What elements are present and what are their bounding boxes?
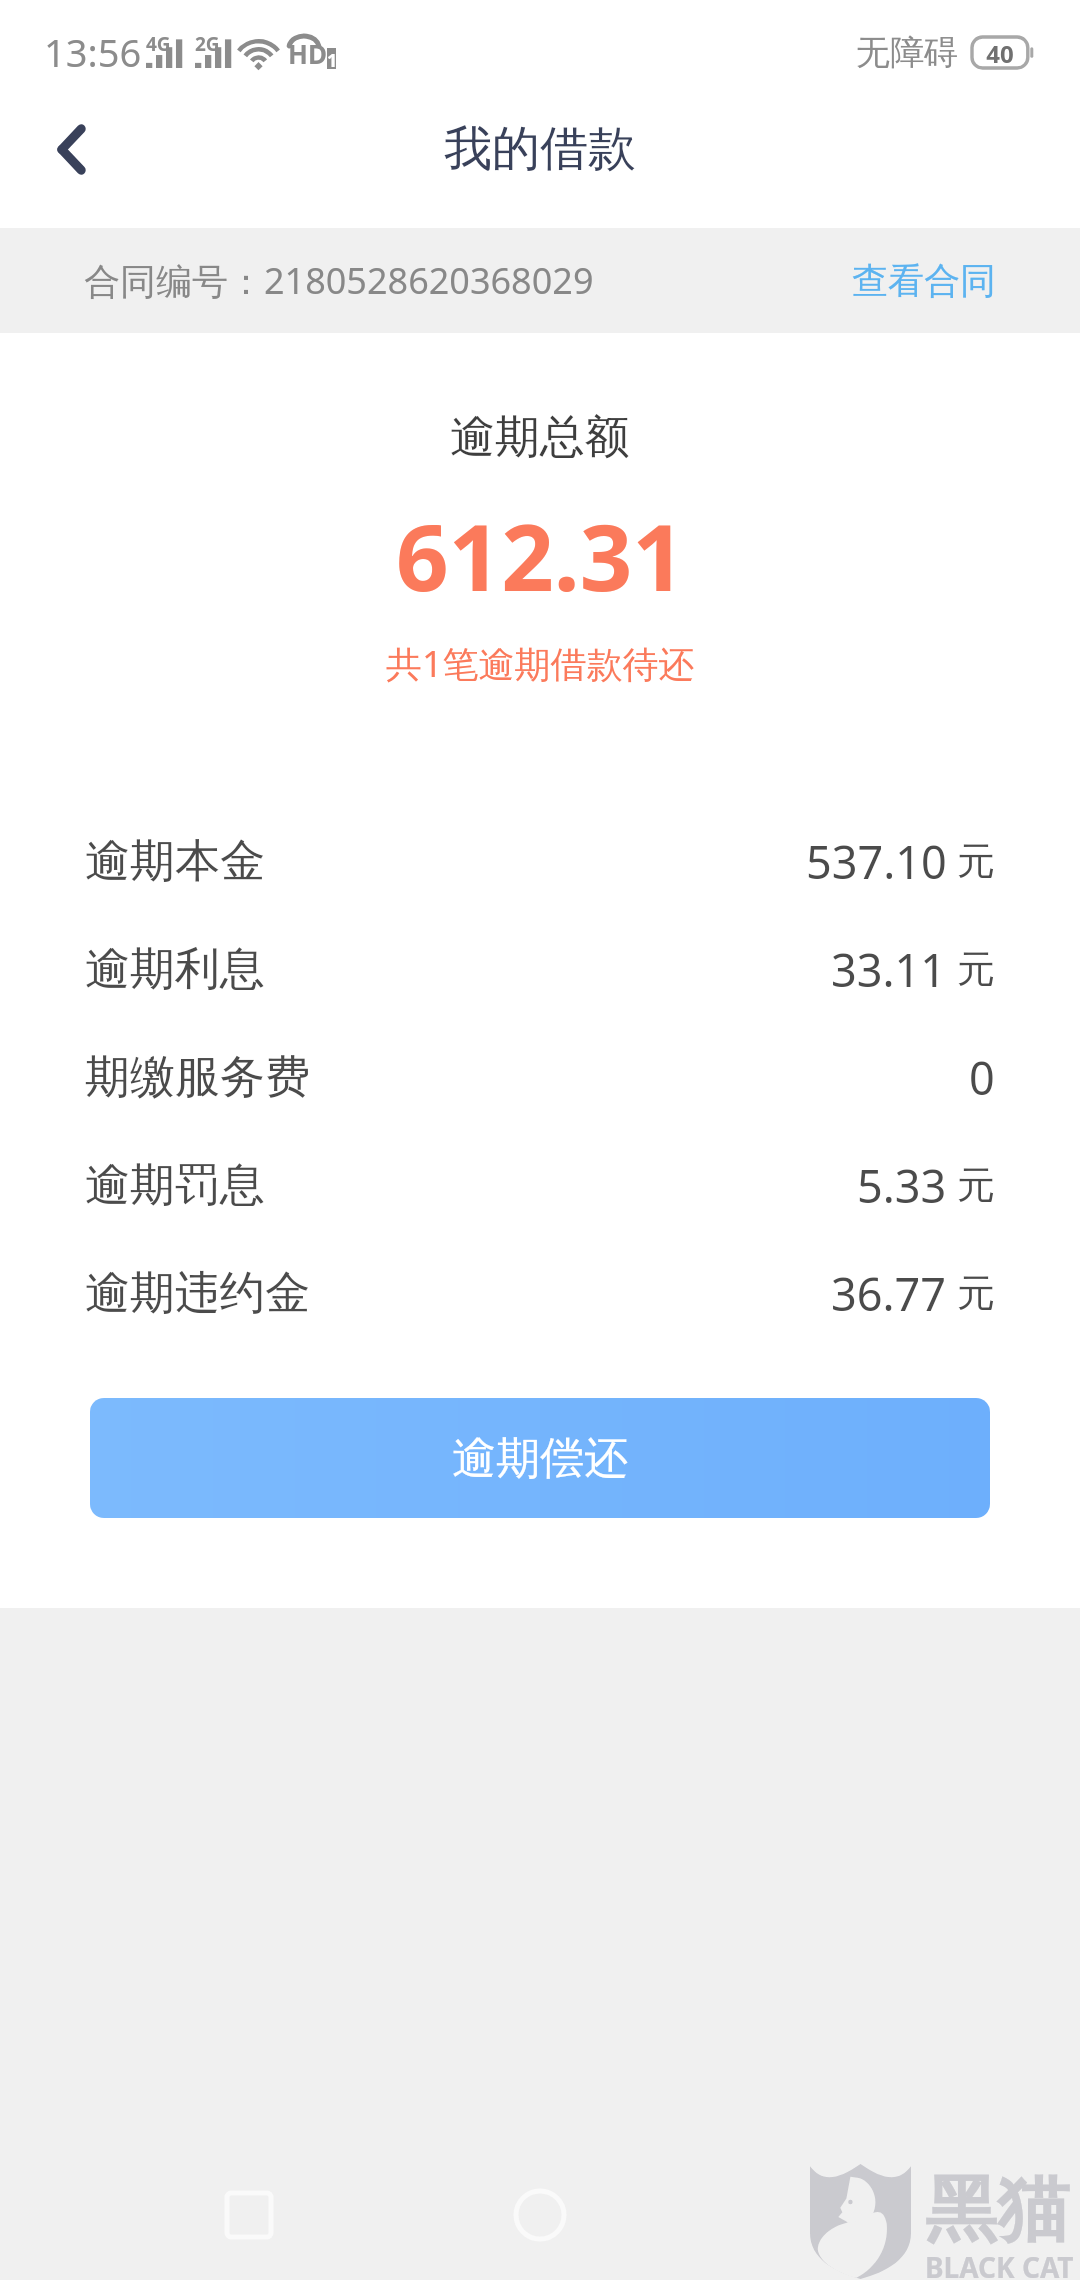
button[interactable]: 查看合同 [852,246,996,315]
staticText: 逾期利息 [85,941,265,998]
staticText: 40 [972,37,1028,68]
staticText: 元 [957,1269,995,1317]
staticText: BLACK CAT [925,2248,1074,2280]
staticText: 1 [327,48,336,69]
staticText: 537.10 [806,831,947,892]
staticText: 33.11 [831,939,947,1000]
staticText: 逾期偿还 [452,1431,628,1486]
staticText: 逾期总额 [450,409,630,466]
staticText: 我的借款 [444,119,636,179]
staticText: HD [288,36,327,69]
staticText: 期缴服务费 [85,1049,310,1106]
staticText: 合同编号：2180528620368029 [84,256,594,305]
staticText: 4G [146,31,171,57]
staticText: 黑猫 [925,2165,1069,2256]
staticText: 无障碍 [856,31,958,74]
button[interactable]: 逾期偿还 [90,1398,990,1518]
staticText: 2G [195,31,220,57]
staticText: 元 [957,1161,995,1209]
staticText: 查看合同 [852,258,996,303]
button[interactable]: 返回 [28,106,114,192]
staticText: 5.33 [857,1155,947,1216]
staticText: 逾期违约金 [85,1265,310,1322]
staticText: 0 [969,1047,995,1108]
staticText: 共1笔逾期借款待还 [386,639,695,688]
staticText: 13:56 [44,26,142,78]
staticText: 元 [957,837,995,885]
staticText: 612.31 [396,493,685,618]
staticText: 逾期本金 [85,833,265,890]
staticText: 36.77 [831,1263,947,1324]
staticText: 元 [957,945,995,993]
staticText: 逾期罚息 [85,1157,265,1214]
